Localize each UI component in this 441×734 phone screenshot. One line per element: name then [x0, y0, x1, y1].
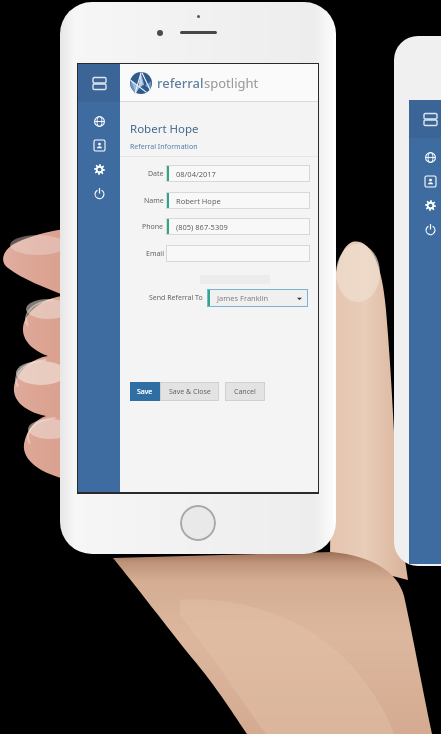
- staticText: Email: [146, 249, 164, 259]
- button[interactable]: Save: [130, 382, 160, 401]
- staticText: Save & Close: [169, 387, 211, 397]
- staticText: Cancel: [234, 387, 256, 397]
- button[interactable]: [166, 245, 310, 262]
- staticText: (805) 867-5309: [176, 222, 228, 232]
- staticText: Robert Hope: [176, 196, 221, 206]
- button[interactable]: Power: [93, 187, 106, 200]
- staticText: James Franklin: [217, 293, 269, 303]
- staticText: spotlight: [204, 74, 259, 92]
- button[interactable]: 08/04/2017: [166, 165, 310, 182]
- staticText: Name: [144, 196, 164, 206]
- button[interactable]: Contacts: [93, 139, 106, 152]
- staticText: Date: [148, 169, 164, 179]
- staticText: Referral Information: [130, 142, 198, 152]
- staticText: referral: [157, 74, 204, 92]
- button[interactable]: James Franklin: [207, 289, 308, 307]
- staticText: 08/04/2017: [176, 169, 216, 179]
- staticText: Phone: [142, 222, 164, 232]
- staticText: Save: [137, 387, 153, 397]
- button[interactable]: Robert Hope: [166, 192, 310, 209]
- button[interactable]: Menu: [78, 64, 120, 102]
- button[interactable]: Save & Close: [160, 382, 219, 401]
- button[interactable]: Cancel: [225, 382, 265, 401]
- staticText: Robert Hope: [130, 121, 199, 137]
- button[interactable]: Settings: [93, 163, 106, 176]
- button[interactable]: Dashboard: [93, 115, 106, 128]
- button[interactable]: (805) 867-5309: [166, 218, 310, 235]
- button[interactable]: Home: [180, 505, 216, 541]
- staticText: Send Referral To: [149, 293, 203, 303]
